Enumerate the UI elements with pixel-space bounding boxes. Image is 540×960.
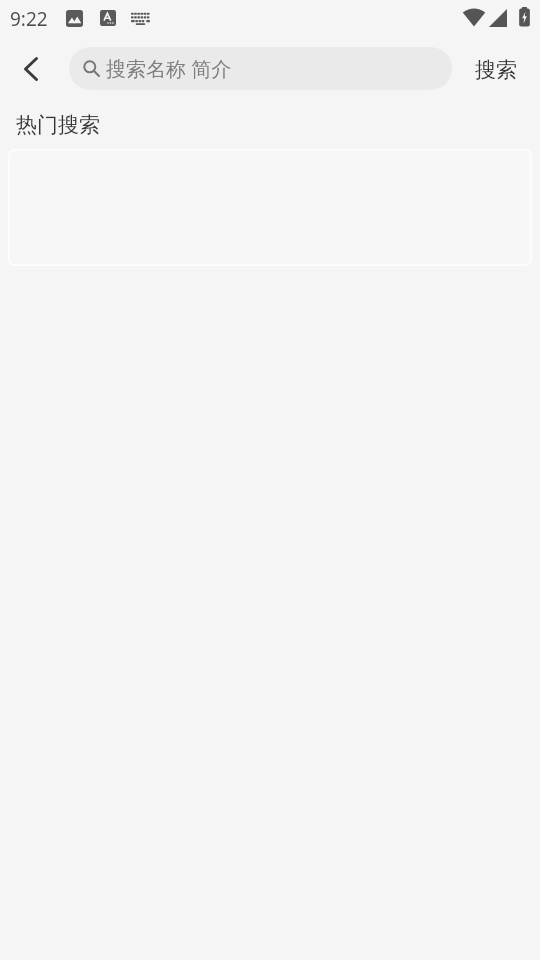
- staticText: 搜索名称 简介: [106, 55, 232, 82]
- button[interactable]: Back: [7, 45, 55, 93]
- staticText: 热门搜索: [16, 112, 100, 138]
- staticText: 9:22: [10, 6, 48, 32]
- button[interactable]: 搜索名称 简介: [69, 47, 452, 90]
- staticText: 搜索: [475, 57, 517, 83]
- button[interactable]: 搜索: [460, 48, 532, 92]
